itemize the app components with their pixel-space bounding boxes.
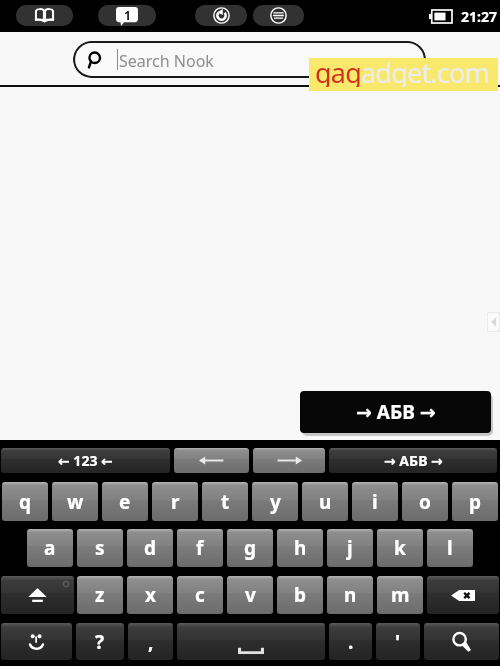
staticText: 21:27 [461, 7, 497, 26]
staticText: 1 [124, 7, 131, 22]
staticText: gag [315, 54, 361, 87]
staticText: k [394, 535, 406, 561]
button[interactable]: Open panel [487, 312, 500, 332]
button[interactable]: y [252, 482, 298, 521]
staticText: . [348, 629, 354, 655]
button[interactable]: → АБВ → [300, 391, 491, 433]
button[interactable]: g [227, 529, 273, 567]
button[interactable]: d [127, 529, 173, 567]
button[interactable]: e [102, 482, 148, 521]
staticText: n [344, 582, 357, 608]
button[interactable]: x [127, 576, 173, 614]
staticText: g [244, 535, 257, 561]
staticText: s [95, 535, 105, 561]
button[interactable]: ? [76, 623, 124, 660]
staticText: x [145, 582, 156, 608]
button[interactable]: Library [16, 5, 73, 26]
button[interactable]: p [452, 482, 498, 521]
staticText: q [19, 489, 32, 515]
staticText: h [294, 535, 307, 561]
button[interactable]: Space [177, 623, 325, 660]
staticText: z [95, 582, 105, 608]
staticText: p [469, 489, 482, 515]
staticText: adget.com [361, 54, 489, 87]
staticText: → АБВ → [356, 399, 436, 425]
button[interactable]: Shift [1, 576, 74, 614]
button[interactable]: Notifications [98, 5, 156, 26]
staticText: ? [95, 629, 105, 655]
button[interactable]: Menu [253, 5, 304, 26]
button[interactable]: Emoji [1, 623, 72, 660]
button[interactable]: m [377, 576, 423, 614]
staticText: i [372, 489, 378, 515]
staticText: d [144, 535, 157, 561]
staticText: c [195, 582, 205, 608]
button[interactable]: w [52, 482, 98, 521]
button[interactable]: → АБВ → [329, 448, 497, 473]
button[interactable]: i [352, 482, 398, 521]
staticText: o [419, 489, 431, 515]
button[interactable]: t [202, 482, 248, 521]
button[interactable]: q [2, 482, 48, 521]
button[interactable]: o [402, 482, 448, 521]
staticText: w [67, 489, 84, 515]
button[interactable]: a [27, 529, 73, 567]
staticText: b [294, 582, 307, 608]
staticText: → АБВ → [384, 451, 443, 470]
button[interactable]: n [327, 576, 373, 614]
button[interactable]: Search Nook [73, 41, 426, 78]
staticText: u [319, 489, 332, 515]
button[interactable]: f [177, 529, 223, 567]
button[interactable]: Refresh [195, 5, 247, 26]
staticText: t [221, 489, 230, 515]
button[interactable]: ' [376, 623, 420, 660]
button[interactable]: r [152, 482, 198, 521]
button[interactable]: Right [253, 448, 325, 473]
button[interactable]: j [327, 529, 373, 567]
staticText: y [270, 489, 281, 515]
staticText: e [119, 489, 131, 515]
button[interactable]: Search [424, 623, 499, 660]
button[interactable]: k [377, 529, 423, 567]
button[interactable]: Left [174, 448, 249, 473]
button[interactable]: v [227, 576, 273, 614]
staticText: Search Nook [119, 50, 214, 72]
staticText: l [447, 535, 453, 561]
button[interactable]: l [427, 529, 473, 567]
button[interactable]: , [128, 623, 173, 660]
button[interactable]: b [277, 576, 323, 614]
button[interactable]: ← 123 ← [1, 448, 170, 473]
staticText: r [171, 489, 180, 515]
staticText: j [347, 535, 353, 561]
staticText: f [196, 535, 204, 561]
staticText: a [44, 535, 56, 561]
staticText: ' [395, 629, 401, 655]
button[interactable]: c [177, 576, 223, 614]
staticText: , [148, 629, 154, 655]
button[interactable]: u [302, 482, 348, 521]
button[interactable]: h [277, 529, 323, 567]
staticText: ← 123 ← [58, 451, 113, 470]
button[interactable]: Backspace [427, 576, 499, 614]
button[interactable]: . [329, 623, 372, 660]
button[interactable]: z [77, 576, 123, 614]
staticText: m [391, 582, 410, 608]
staticText: v [245, 582, 256, 608]
button[interactable]: s [77, 529, 123, 567]
